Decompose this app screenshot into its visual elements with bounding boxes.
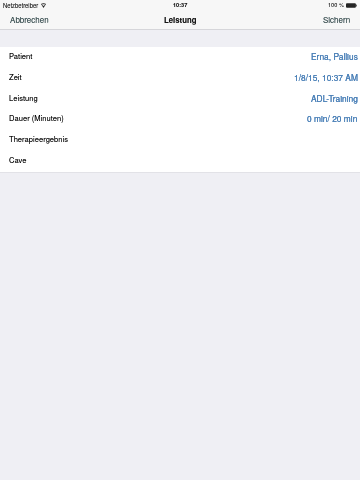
button[interactable]: Cave: [0, 151, 360, 172]
staticText: Abbrechen: [10, 14, 49, 25]
staticText: Dauer (Minuten): [9, 112, 64, 123]
button[interactable]: Dauer (Minuten): [0, 109, 360, 130]
staticText: ADL-Training: [311, 92, 358, 104]
staticText: 10:37: [173, 1, 188, 9]
staticText: Leistung: [164, 14, 197, 25]
staticText: 0 min/ 20 min: [307, 112, 358, 124]
staticText: Therapieergebnis: [9, 133, 69, 144]
staticText: Patient: [9, 50, 33, 61]
staticText: Therapieergebnis: [9, 133, 69, 144]
staticText: Patient: [9, 50, 33, 61]
staticText: Cave: [9, 154, 27, 165]
staticText: 100 %: [328, 1, 344, 9]
staticText: 10:37: [173, 1, 188, 9]
staticText: Netzbetreiber: [3, 1, 39, 9]
staticText: Zeit: [9, 71, 22, 82]
staticText: Dauer (Minuten): [9, 112, 64, 123]
button[interactable]: Sichern: [314, 10, 360, 29]
button[interactable]: Leistung: [0, 89, 360, 110]
staticText: Leistung: [9, 92, 38, 103]
staticText: Leistung: [164, 14, 197, 25]
staticText: 0 min/ 20 min: [307, 112, 358, 124]
staticText: Abbrechen: [10, 14, 49, 25]
button[interactable]: Patient: [0, 47, 360, 68]
button[interactable]: Abbrechen: [0, 10, 59, 29]
staticText: 1/8/15, 10:37 AM: [294, 71, 358, 83]
staticText: 100 %: [328, 1, 344, 9]
button[interactable]: Therapieergebnis: [0, 130, 360, 151]
other: WLAN: [41, 3, 46, 8]
staticText: Leistung: [9, 92, 38, 103]
staticText: Sichern: [323, 14, 351, 25]
staticText: Erna, Pallius: [311, 50, 358, 62]
other: Batterie: [346, 3, 357, 8]
staticText: Cave: [9, 154, 27, 165]
staticText: ADL-Training: [311, 92, 358, 104]
staticText: Erna, Pallius: [311, 50, 358, 62]
staticText: 1/8/15, 10:37 AM: [294, 71, 358, 83]
staticText: Netzbetreiber: [3, 1, 39, 9]
button[interactable]: Zeit: [0, 68, 360, 89]
staticText: Zeit: [9, 71, 22, 82]
staticText: Sichern: [323, 14, 351, 25]
